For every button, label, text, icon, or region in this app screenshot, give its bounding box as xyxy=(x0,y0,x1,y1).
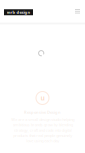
staticText: mrb design xyxy=(6,10,30,15)
staticText: u xyxy=(40,94,44,102)
staticText: We are a small design studio helping amb… xyxy=(11,117,74,143)
button[interactable]: Menu xyxy=(75,9,80,15)
staticText: Responsive Design xyxy=(24,109,61,115)
button[interactable]: mrb design xyxy=(4,9,33,15)
